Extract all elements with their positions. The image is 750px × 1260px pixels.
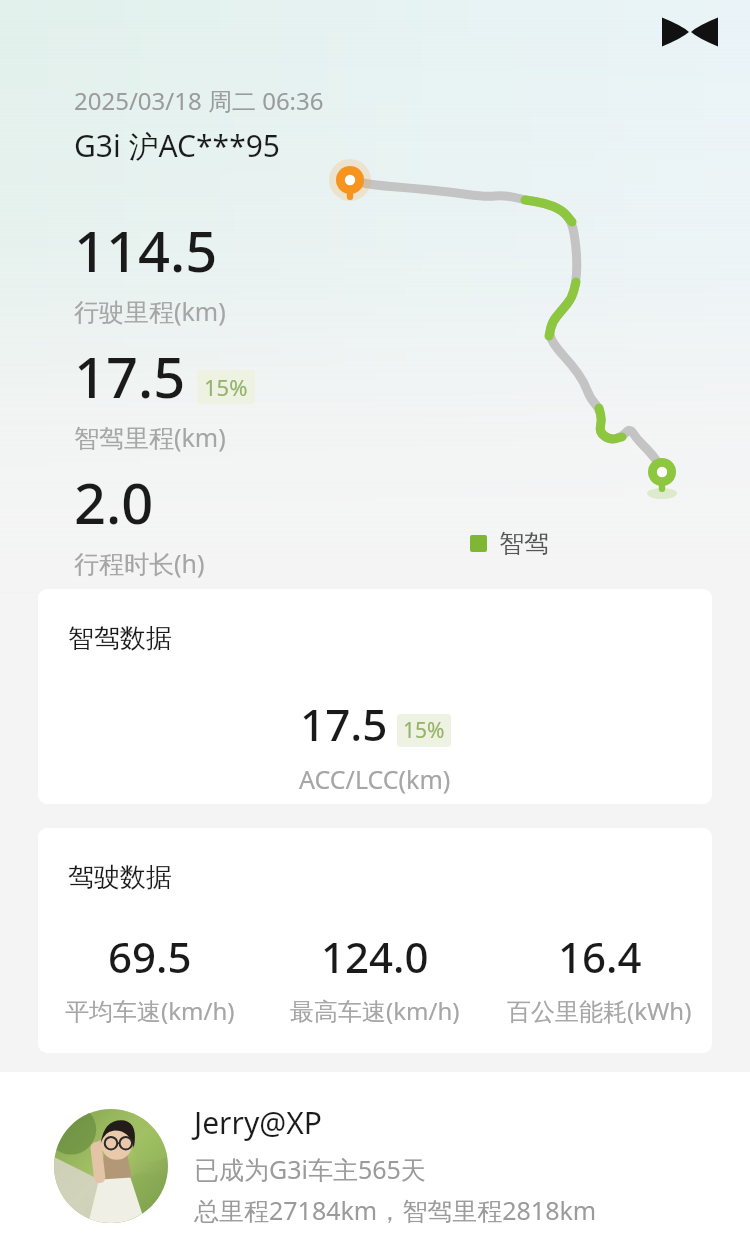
staticText: Jerry@XP [194,1102,322,1143]
staticText: 已成为G3i车主565天 [194,1152,426,1186]
staticText: 15% [204,372,248,402]
staticText: 17.5 [300,694,388,754]
staticText: 驾驶数据 [68,861,172,894]
staticText: ACC/LCC(km) [299,762,451,796]
staticText: 16.4 [558,928,642,985]
button[interactable]: Jerry@XP [0,1072,750,1260]
staticText: 总里程27184km，智驾里程2818km [194,1193,597,1227]
button[interactable]: 驾驶数据 [38,828,712,1053]
staticText: 平均车速(km/h) [65,994,235,1027]
button[interactable]: XPeng logo [655,8,725,56]
staticText: 2025/03/18 周二 06:36 [74,84,324,117]
staticText: 114.5 [74,212,218,288]
staticText: 2.0 [74,464,154,540]
button[interactable]: 69.5 [38,928,262,1027]
staticText: 智驾数据 [68,622,172,655]
staticText: 智驾里程(km) [74,420,226,454]
button[interactable]: 124.0 [262,928,487,1027]
staticText: 最高车速(km/h) [290,994,460,1027]
staticText: 智驾 [499,528,549,559]
staticText: 15% [403,716,445,745]
staticText: 69.5 [108,928,192,985]
button[interactable]: 智驾数据 [38,589,712,804]
staticText: 124.0 [321,928,429,985]
button[interactable]: 智驾 [470,528,549,559]
staticText: G3i 沪AC***95 [74,125,280,166]
button[interactable]: 16.4 [487,928,712,1027]
staticText: 行程时长(h) [74,546,205,580]
staticText: 17.5 [74,338,186,414]
staticText: 百公里能耗(kWh) [507,994,692,1027]
staticText: 行驶里程(km) [74,294,226,328]
